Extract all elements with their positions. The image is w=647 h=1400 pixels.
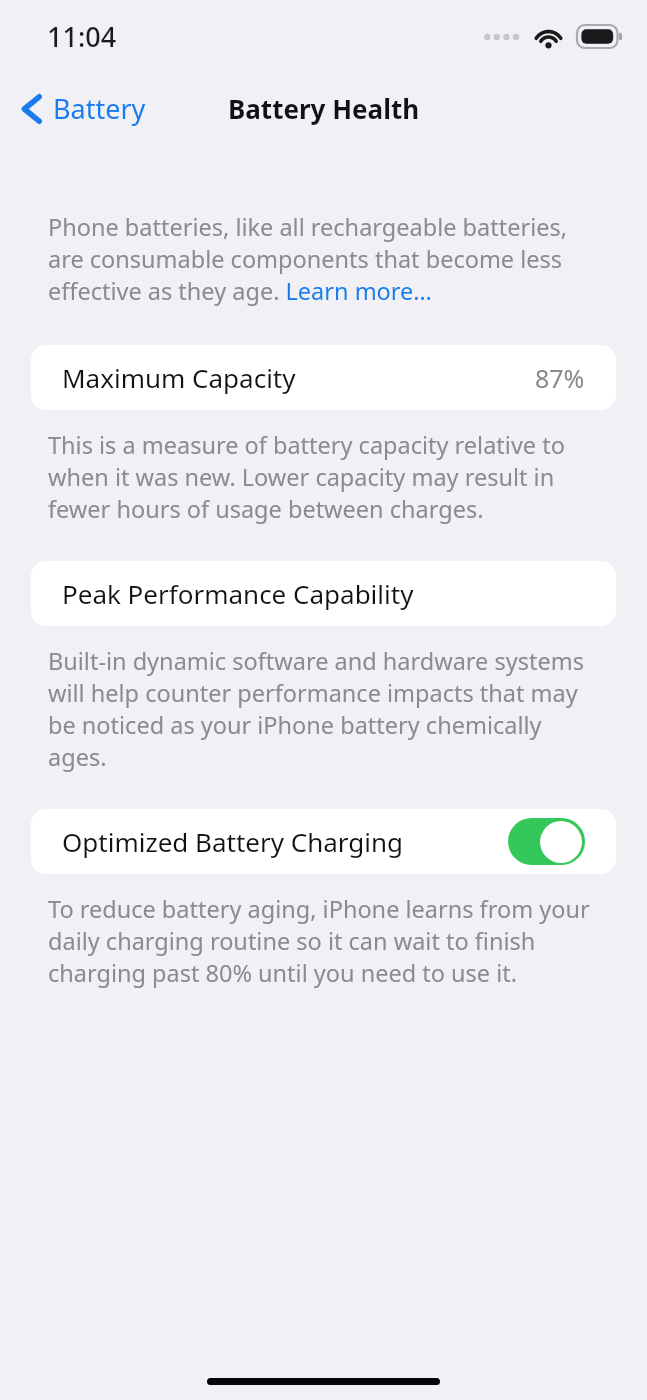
staticText: Battery xyxy=(53,90,146,127)
button[interactable]: Optimized Battery Charging toggle, on xyxy=(508,818,585,865)
staticText: 11:04 xyxy=(47,18,117,55)
button[interactable]: Phone batteries, like all rechargeable b… xyxy=(48,211,599,307)
staticText: 87% xyxy=(535,361,585,395)
staticText: Built-in dynamic software and hardware s… xyxy=(48,645,599,773)
staticText: Battery Health xyxy=(228,91,420,126)
staticText: Maximum Capacity xyxy=(62,360,296,395)
staticText: Peak Performance Capability xyxy=(62,576,414,611)
button[interactable]: Maximum Capacity xyxy=(31,345,616,410)
staticText: Optimized Battery Charging xyxy=(62,824,404,859)
staticText: Phone batteries, like all rechargeable b… xyxy=(48,211,599,307)
button[interactable]: Battery xyxy=(14,84,156,133)
button[interactable]: Optimized Battery Charging xyxy=(31,809,616,874)
staticText: This is a measure of battery capacity re… xyxy=(48,429,599,525)
staticText: To reduce battery aging, iPhone learns f… xyxy=(48,893,599,989)
button[interactable]: Peak Performance Capability xyxy=(31,561,616,626)
